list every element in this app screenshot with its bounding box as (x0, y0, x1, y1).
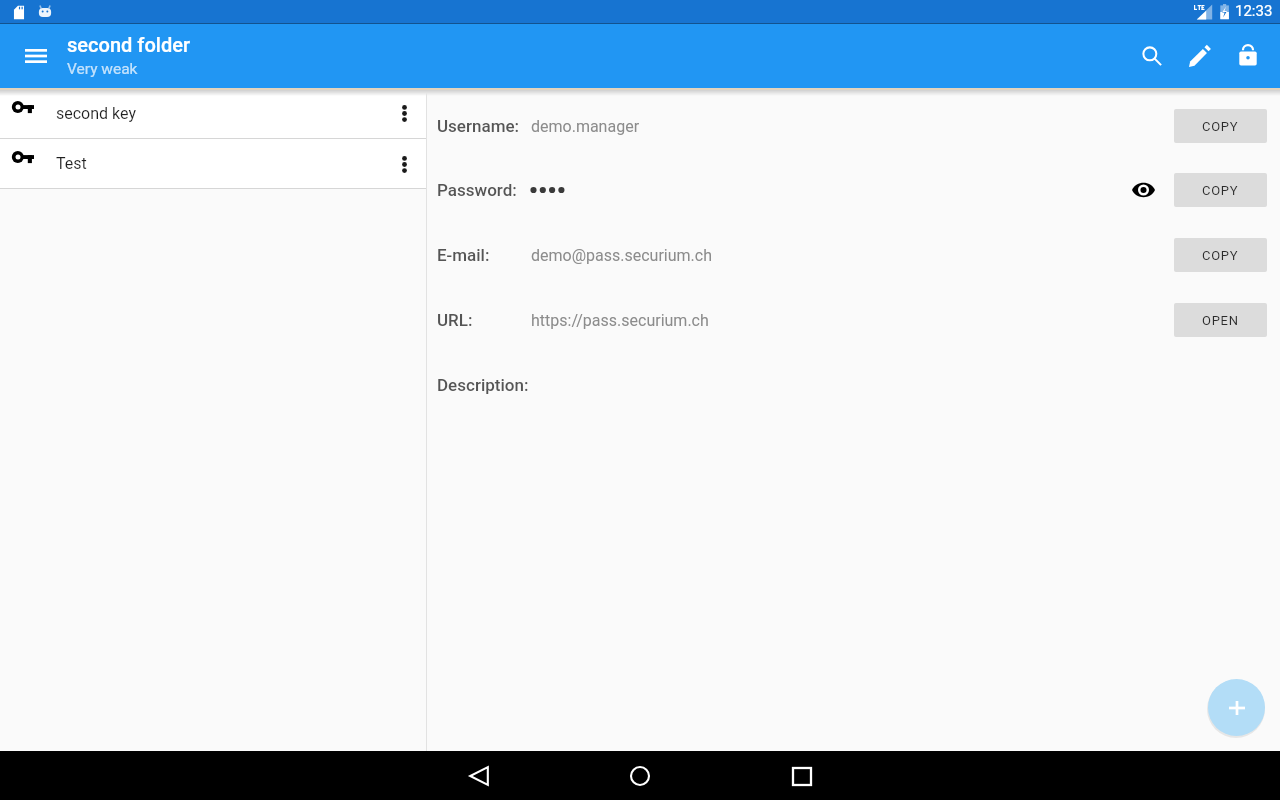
staticText: 12:33 (1235, 2, 1273, 20)
staticText: Password: (437, 180, 517, 200)
button[interactable]: Recent apps (778, 752, 826, 800)
button[interactable]: Add entry (1208, 679, 1265, 736)
staticText: Very weak (67, 60, 138, 78)
staticText: Description: (437, 375, 529, 395)
button[interactable]: Show password (1123, 170, 1163, 210)
button[interactable]: Open navigation drawer (12, 32, 60, 80)
button[interactable]: second key (0, 88, 426, 138)
staticText: COPY (1202, 183, 1239, 198)
staticText: Test (56, 154, 87, 173)
button[interactable]: Lock (1224, 32, 1272, 80)
staticText: COPY (1202, 119, 1239, 134)
button[interactable]: Search (1128, 32, 1176, 80)
button[interactable]: Home (616, 752, 664, 800)
button[interactable]: COPY (1174, 173, 1267, 207)
button[interactable]: Test (0, 139, 426, 188)
button[interactable]: Edit (1176, 32, 1224, 80)
staticText: https://pass.securium.ch (531, 311, 709, 330)
staticText: OPEN (1202, 313, 1239, 328)
staticText: demo.manager (531, 117, 640, 136)
button[interactable]: COPY (1174, 109, 1267, 143)
staticText: E-mail: (437, 245, 490, 265)
staticText: COPY (1202, 248, 1239, 263)
button[interactable]: COPY (1174, 238, 1267, 272)
staticText: Username: (437, 116, 520, 136)
staticText: second folder (67, 33, 190, 56)
button[interactable]: OPEN (1174, 303, 1267, 337)
button[interactable]: More options (382, 142, 426, 186)
staticText: demo@pass.securium.ch (531, 246, 712, 265)
button[interactable]: Back (456, 752, 504, 800)
button[interactable]: More options (382, 91, 426, 135)
staticText: second key (56, 104, 136, 123)
staticText: URL: (437, 310, 473, 330)
